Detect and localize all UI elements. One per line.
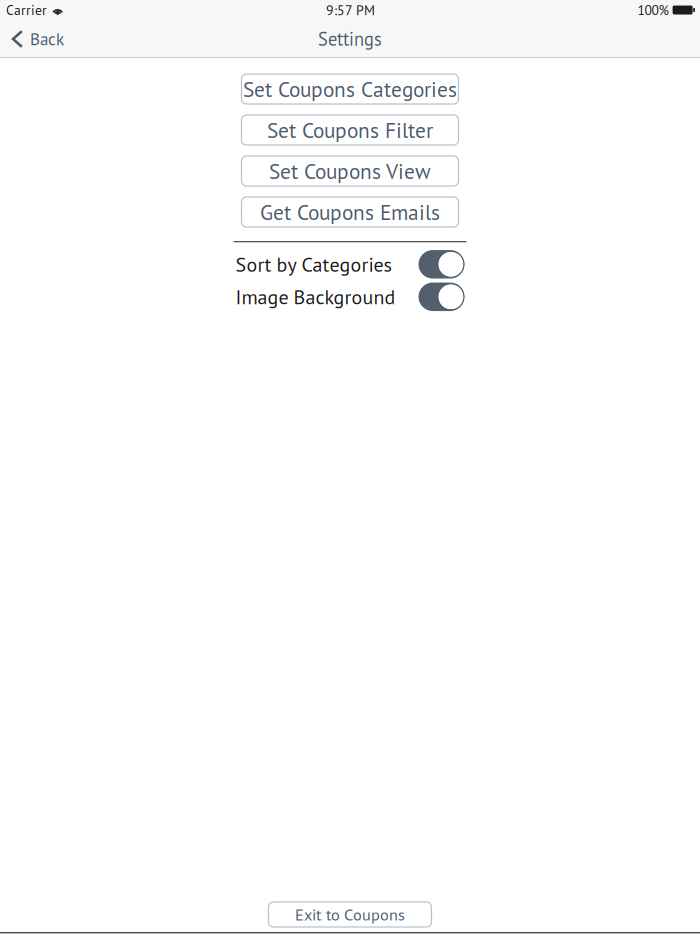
staticText: Sort by Categories (235, 251, 391, 277)
button[interactable]: Set Coupons Categories (241, 74, 458, 104)
button[interactable]: Sort by Categories (418, 250, 464, 279)
staticText: Settings (318, 27, 382, 51)
staticText: 100% (638, 1, 670, 19)
button[interactable]: Get Coupons Emails (241, 197, 458, 227)
button[interactable]: Back (0, 20, 74, 58)
button[interactable]: Set Coupons View (241, 156, 458, 186)
button[interactable]: Image Background (418, 283, 464, 311)
staticText: Image Background (235, 284, 395, 310)
button[interactable]: Set Coupons Filter (241, 115, 458, 145)
staticText: Set Coupons View (269, 157, 431, 185)
staticText: Get Coupons Emails (260, 198, 440, 226)
staticText: Set Coupons Filter (267, 116, 433, 144)
staticText: Exit to Coupons (295, 904, 405, 925)
staticText: Set Coupons Categories (243, 75, 457, 103)
staticText: Carrier (6, 1, 47, 19)
staticText: Back (30, 28, 64, 50)
staticText: 9:57 PM (326, 1, 375, 19)
button[interactable]: Exit to Coupons (268, 902, 431, 927)
